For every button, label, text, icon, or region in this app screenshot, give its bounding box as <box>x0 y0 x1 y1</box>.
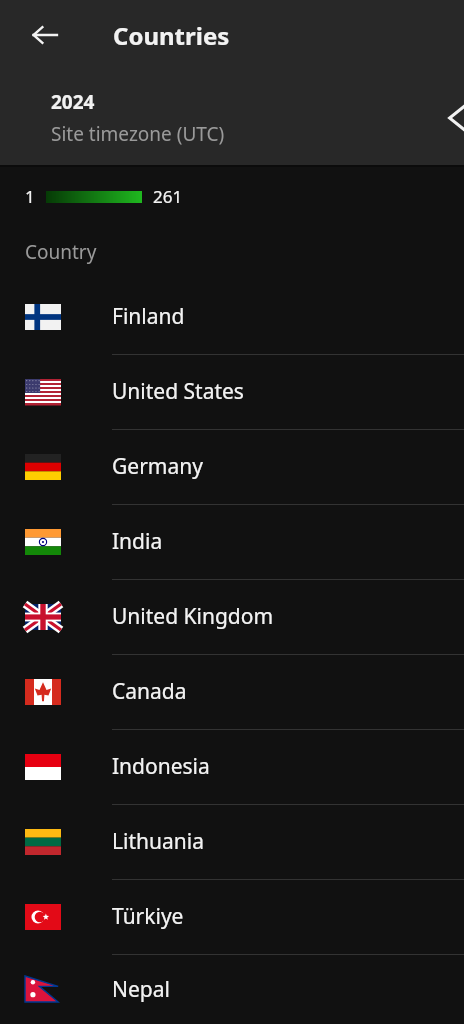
staticText: United States <box>112 377 244 406</box>
staticText: 2024 <box>51 89 95 115</box>
button[interactable]: Indonesia <box>0 729 464 804</box>
button[interactable]: Back <box>21 11 69 59</box>
staticText: Canada <box>112 677 187 706</box>
button[interactable]: United States <box>0 354 464 429</box>
staticText: Country <box>25 239 97 265</box>
staticText: Germany <box>112 452 203 481</box>
staticText: 1 <box>25 185 35 208</box>
button[interactable]: Canada <box>0 654 464 729</box>
button[interactable]: United Kingdom <box>0 579 464 654</box>
staticText: 261 <box>153 185 183 208</box>
staticText: United Kingdom <box>112 602 274 631</box>
button[interactable]: Türkiye <box>0 879 464 954</box>
button[interactable]: Lithuania <box>0 804 464 879</box>
staticText: Countries <box>113 19 230 52</box>
staticText: Finland <box>112 302 185 331</box>
button[interactable]: Germany <box>0 429 464 504</box>
staticText: Lithuania <box>112 827 204 856</box>
button[interactable]: Finland <box>0 279 464 354</box>
staticText: Indonesia <box>112 752 210 781</box>
button[interactable]: Nepal <box>0 954 464 1024</box>
staticText: India <box>112 527 163 556</box>
button[interactable]: Previous <box>436 96 464 140</box>
button[interactable]: India <box>0 504 464 579</box>
staticText: Türkiye <box>112 902 184 931</box>
staticText: Site timezone (UTC) <box>51 121 225 147</box>
staticText: Nepal <box>112 975 170 1004</box>
